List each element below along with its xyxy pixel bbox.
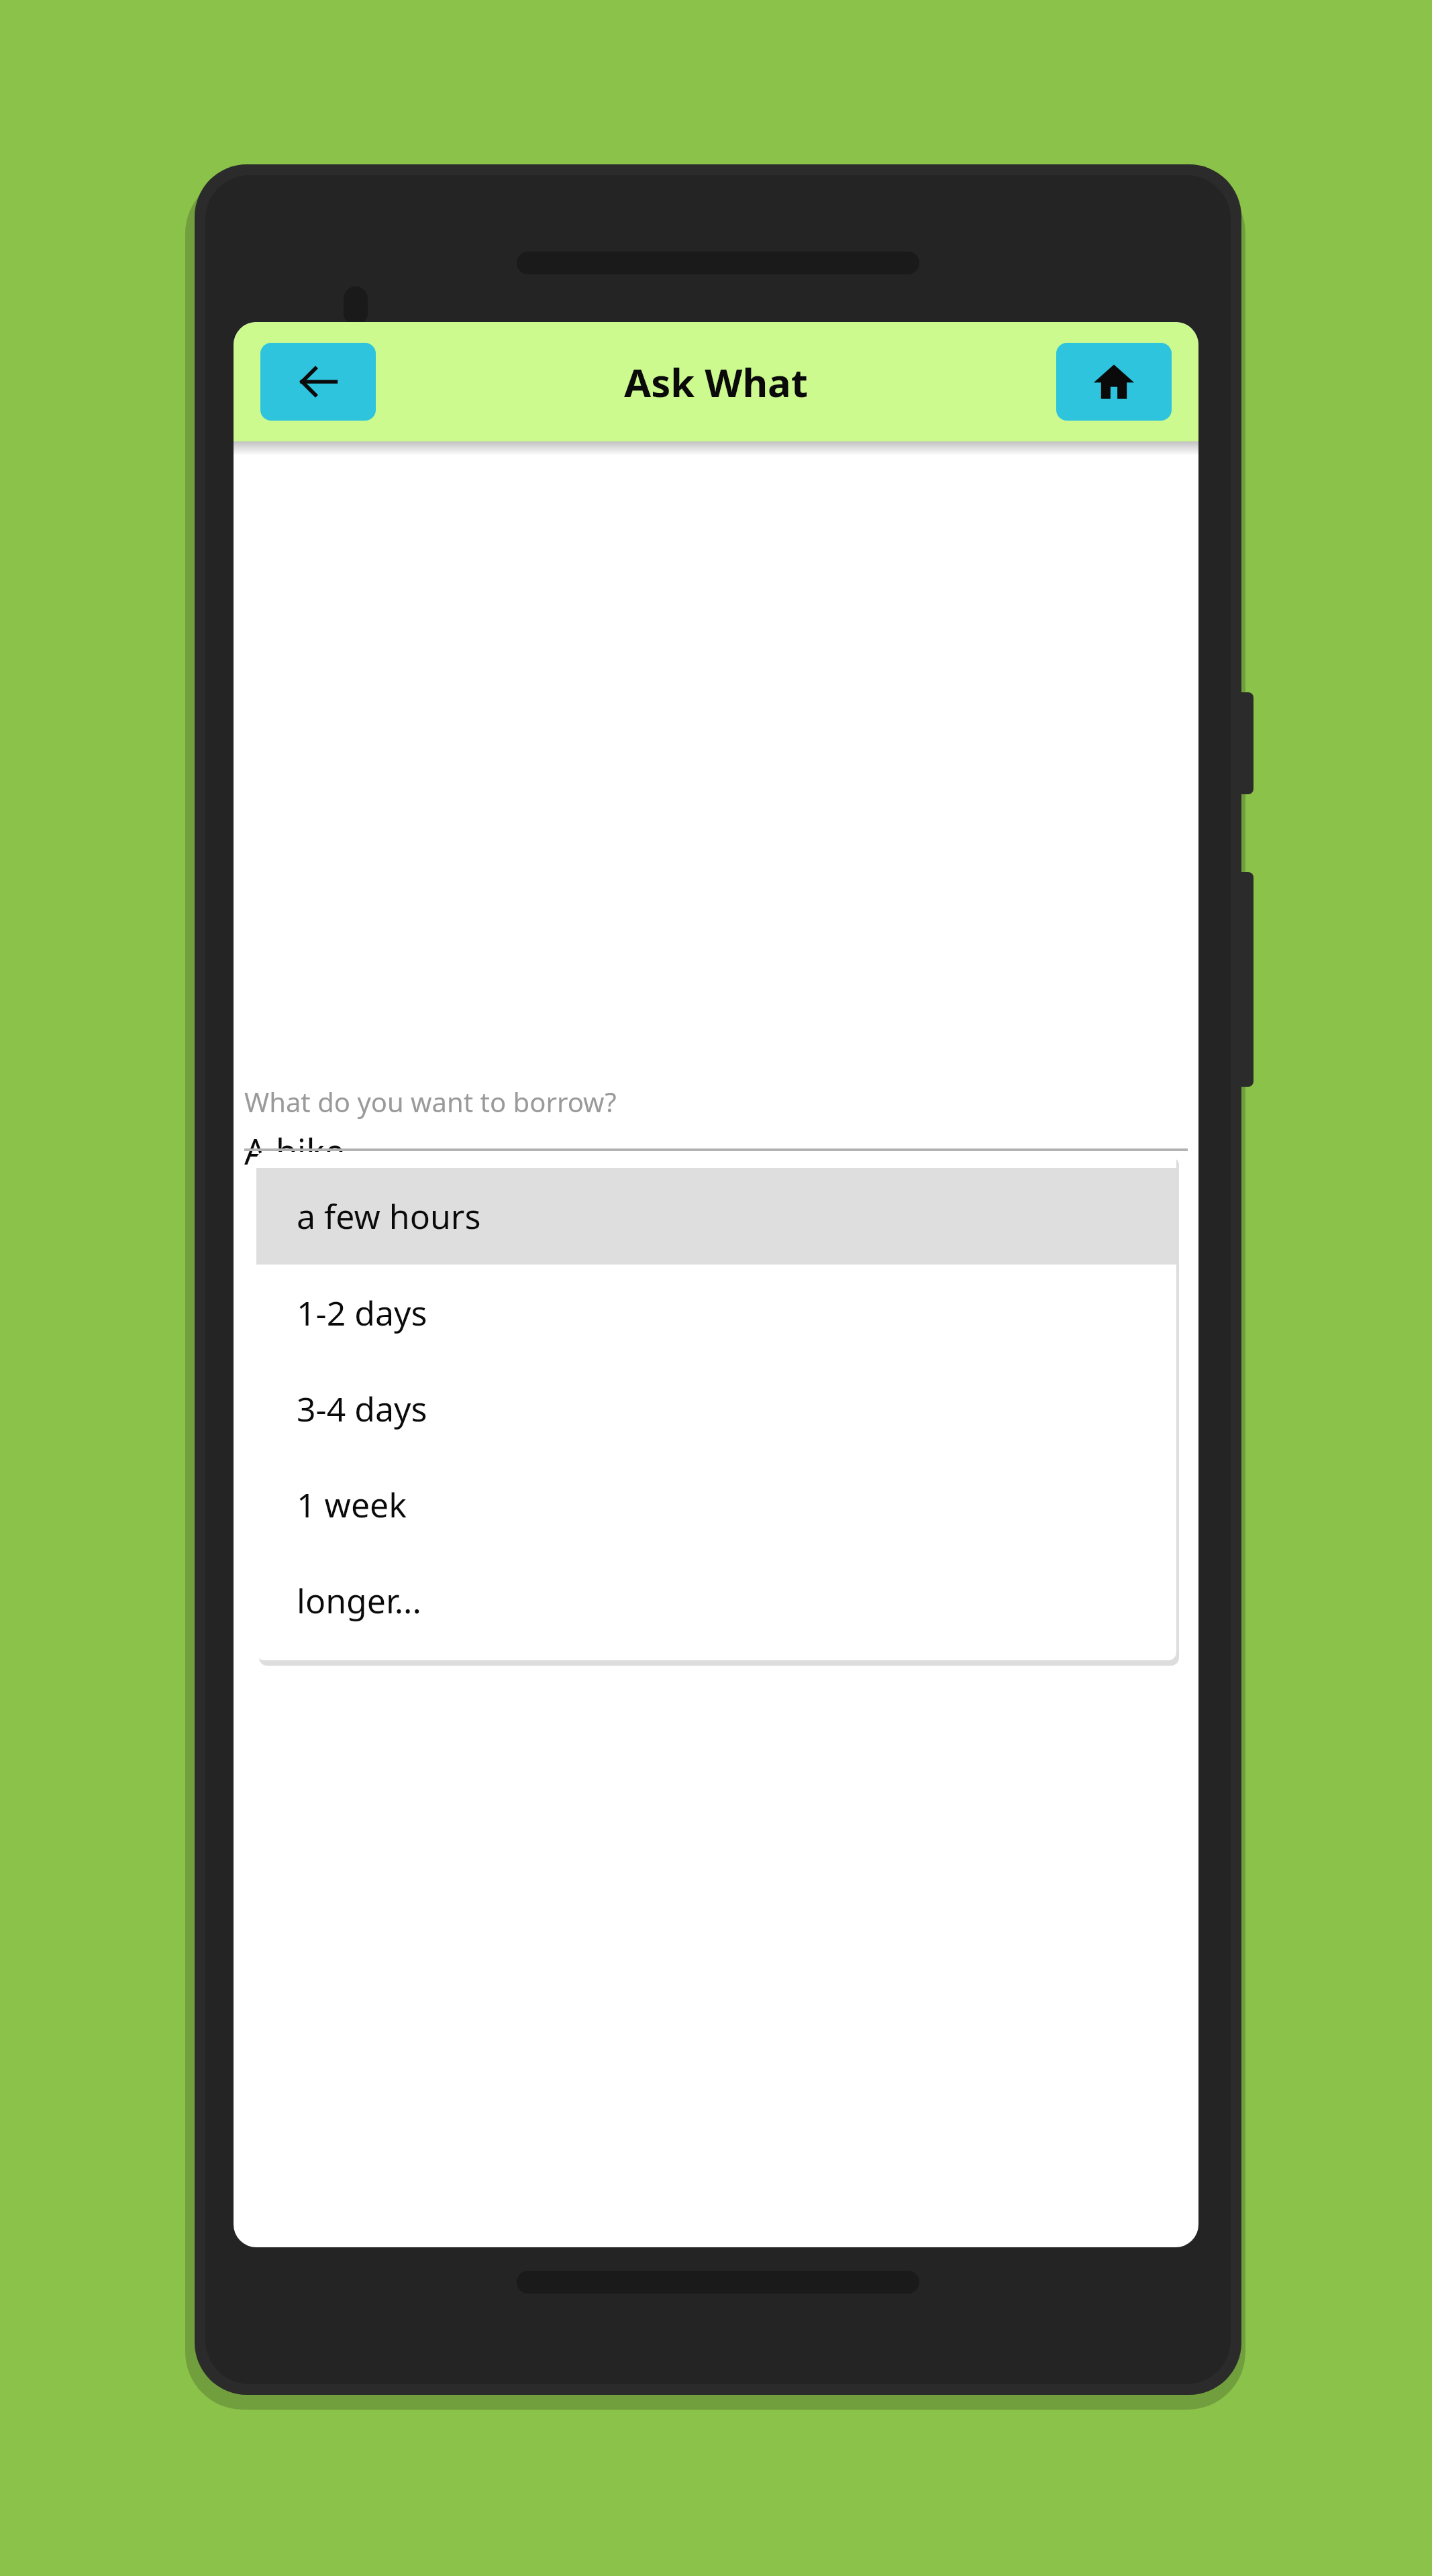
button[interactable]: a few hours — [256, 1168, 1176, 1265]
button[interactable]: 1 week — [256, 1456, 1176, 1552]
staticText: 1 week — [297, 1482, 407, 1527]
button[interactable]: Back — [260, 343, 376, 421]
button[interactable]: 1-2 days — [256, 1265, 1176, 1360]
button[interactable]: 3-4 days — [256, 1360, 1176, 1456]
staticText: A bike — [244, 1127, 345, 1175]
button[interactable]: longer... — [256, 1552, 1176, 1648]
button[interactable]: Home — [1056, 343, 1172, 421]
staticText: a few hours — [297, 1193, 481, 1239]
staticText: longer... — [297, 1578, 421, 1623]
staticText: 3-4 days — [297, 1386, 427, 1432]
staticText: What do you want to borrow? — [244, 1083, 617, 1120]
staticText: Ask What — [624, 356, 808, 409]
staticText: 1-2 days — [297, 1290, 427, 1336]
